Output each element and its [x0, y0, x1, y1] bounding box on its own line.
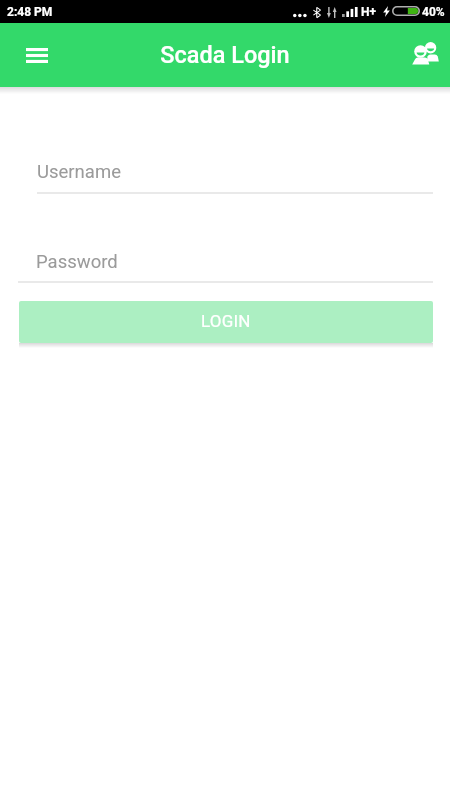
staticText: H+	[361, 5, 377, 19]
button[interactable]: People	[400, 30, 450, 80]
button[interactable]: Password	[18, 242, 433, 283]
button[interactable]: LOGIN	[19, 301, 433, 343]
staticText: Scada Login	[160, 41, 290, 69]
staticText: 40%	[422, 5, 445, 19]
staticText: 2:48 PM	[7, 5, 53, 19]
staticText: LOGIN	[201, 311, 251, 331]
button[interactable]: Username	[37, 152, 433, 194]
staticText: Username	[37, 161, 121, 183]
button[interactable]: Open navigation menu	[15, 34, 58, 77]
staticText: Password	[36, 251, 118, 273]
